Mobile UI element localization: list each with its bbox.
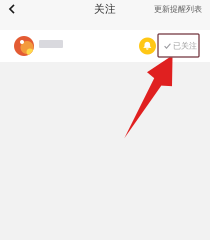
button[interactable]: 已关注 xyxy=(161,38,200,54)
staticText: 关注 xyxy=(94,2,116,15)
button[interactable]: 更新提醒列表 xyxy=(154,1,210,17)
button[interactable]: Back xyxy=(0,0,24,18)
staticText: 更新提醒列表 xyxy=(154,4,202,14)
staticText: 已关注 xyxy=(173,41,197,51)
button[interactable]: Notification settings xyxy=(139,37,156,54)
